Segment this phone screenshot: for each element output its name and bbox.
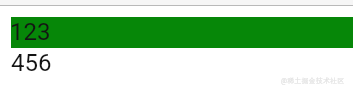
staticText: @稀土掘金技术社区: [281, 77, 345, 85]
button[interactable]: [11, 17, 353, 48]
staticText: 123: [10, 18, 51, 46]
staticText: 456: [11, 49, 52, 77]
button[interactable]: [11, 48, 353, 79]
